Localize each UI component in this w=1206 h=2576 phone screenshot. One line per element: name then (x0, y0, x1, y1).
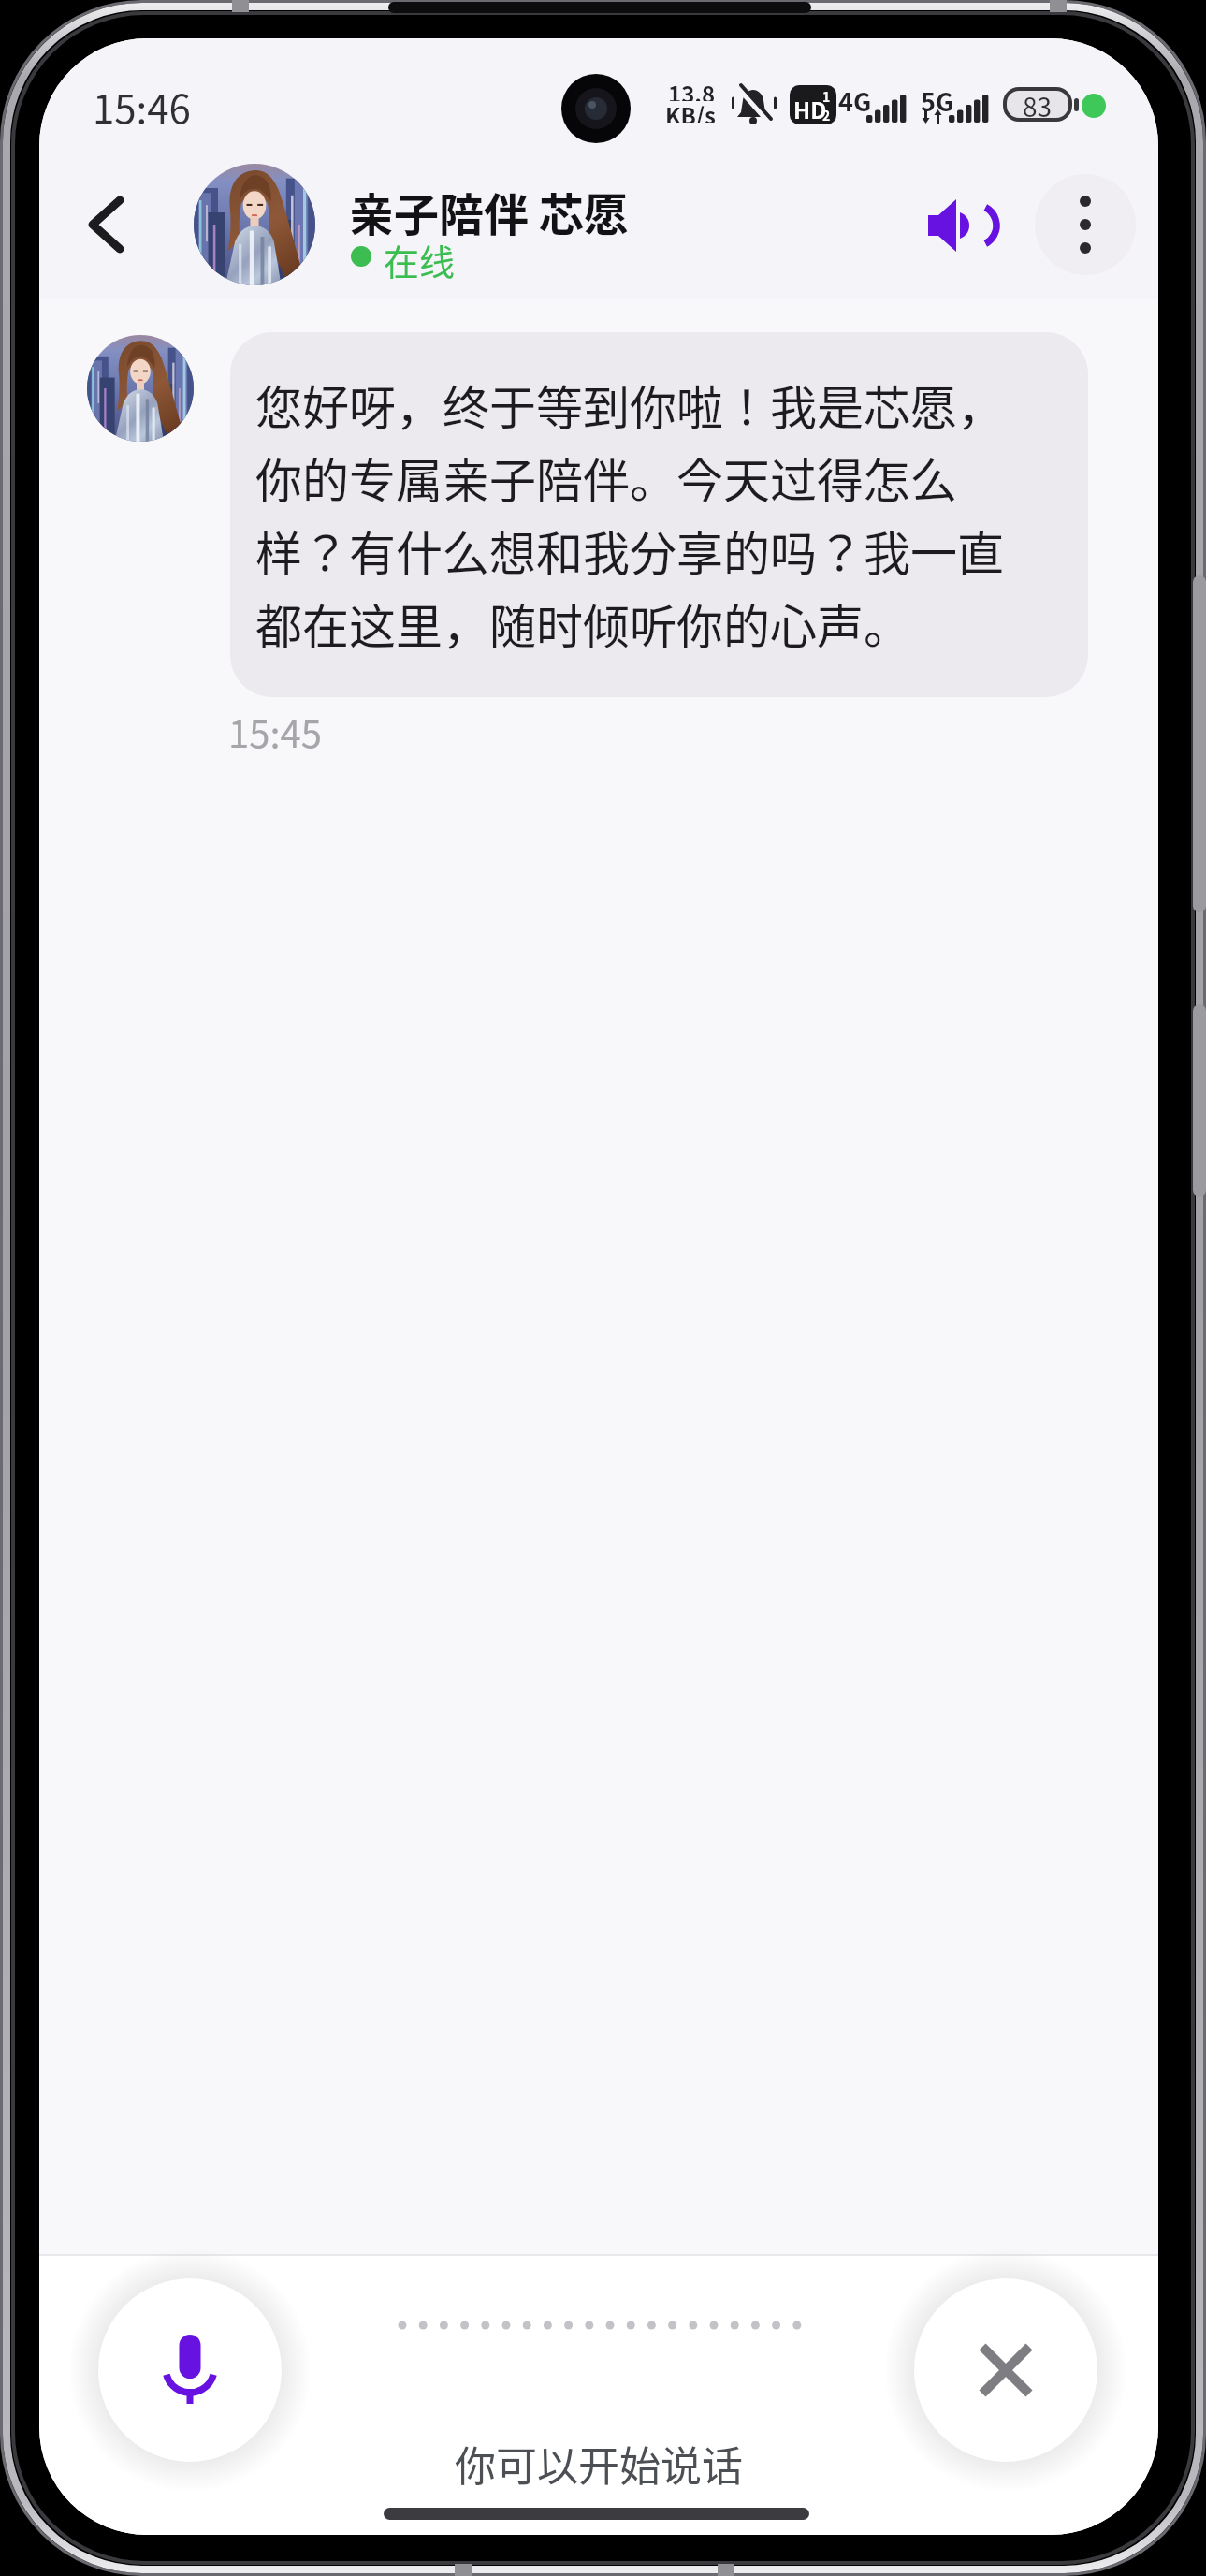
staticText: 您好呀，终于等到你啦！我是芯愿， 你的专属亲子陪伴。今天过得怎么 样？有什么想和… (255, 371, 1004, 658)
button[interactable] (98, 2278, 282, 2462)
button[interactable] (1035, 174, 1136, 275)
staticText: HD (793, 93, 827, 125)
staticText: 83 (1023, 87, 1053, 121)
staticText: 在线 (384, 234, 456, 285)
staticText: 1 (822, 87, 831, 106)
staticText: 5G (921, 82, 954, 119)
staticText: 亲子陪伴 芯愿 (349, 179, 629, 244)
staticText: 你可以开始说话 (455, 2434, 743, 2494)
staticText: 4G (838, 82, 872, 119)
button[interactable] (89, 197, 126, 254)
staticText: 15:46 (93, 78, 191, 135)
staticText: 2 (822, 106, 831, 124)
staticText: KB/s (665, 98, 716, 123)
button[interactable]: 您好呀，终于等到你啦！我是芯愿， 你的专属亲子陪伴。今天过得怎么 样？有什么想和… (230, 332, 1088, 697)
button[interactable] (914, 2278, 1097, 2462)
button[interactable] (928, 198, 992, 253)
staticText: 15:45 (228, 705, 322, 759)
staticText: 13.8 (668, 77, 716, 101)
